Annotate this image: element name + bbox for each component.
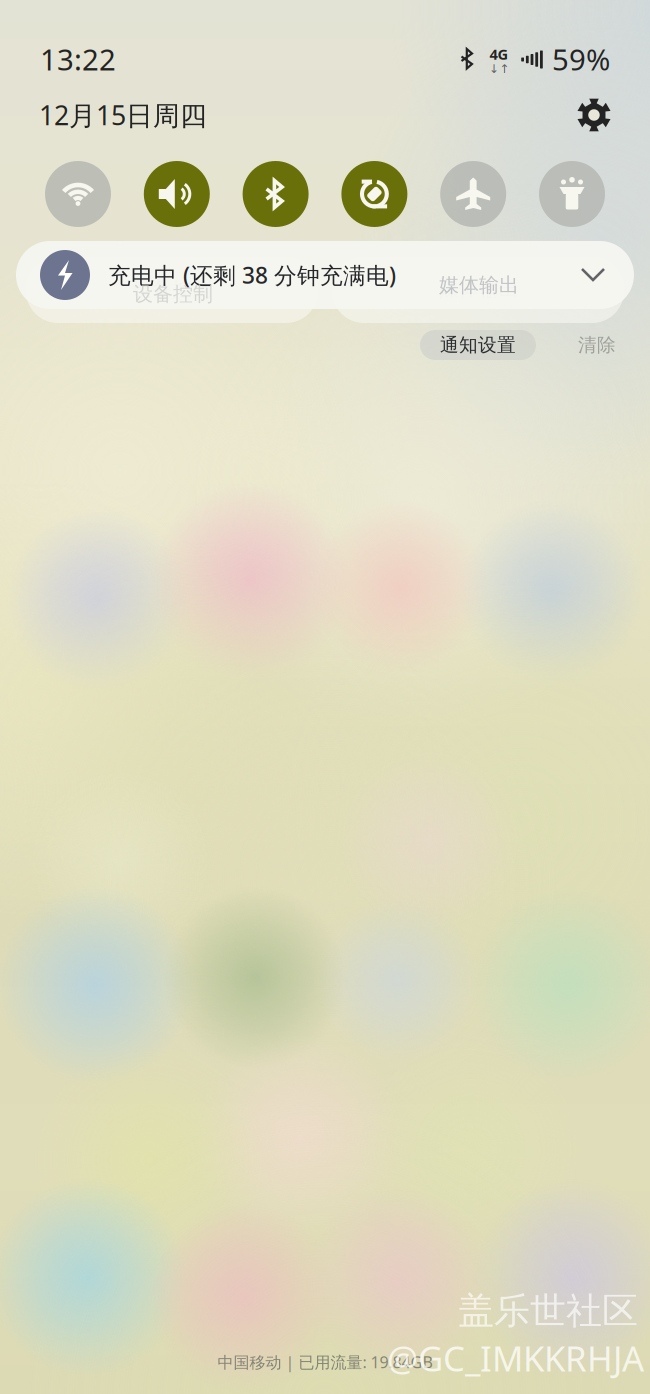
button[interactable]: 充电中 (还剩 38 分钟充满电) xyxy=(16,241,634,309)
button[interactable]: Auto rotate xyxy=(341,161,407,227)
staticText: 59% xyxy=(552,39,610,78)
button[interactable]: 通知设置 xyxy=(420,330,536,360)
button[interactable]: 清除 xyxy=(566,330,628,360)
staticText: 中国移动 | 已用流量: 19.84GB xyxy=(217,1351,432,1373)
staticText: 充电中 (还剩 38 分钟充满电) xyxy=(108,260,396,290)
staticText: ↑ xyxy=(499,62,509,75)
button[interactable]: Wi-Fi xyxy=(45,161,111,227)
staticText: @GC_IMKKRHJA xyxy=(387,1335,644,1381)
button[interactable]: Flashlight xyxy=(539,161,605,227)
staticText: 设备控制 xyxy=(132,277,212,301)
staticText: 通知设置 xyxy=(440,333,516,356)
staticText: ↓ xyxy=(489,62,499,75)
button[interactable]: Settings xyxy=(577,98,611,132)
button[interactable]: Sound xyxy=(144,161,210,227)
staticText: 盖乐世社区 xyxy=(458,1289,638,1333)
staticText: 13:22 xyxy=(40,39,116,78)
button[interactable]: Bluetooth xyxy=(243,161,309,227)
staticText: 清除 xyxy=(578,333,616,356)
staticText: 媒体输出 xyxy=(439,277,519,301)
staticText: 设备控制 xyxy=(133,282,213,306)
staticText: 4G xyxy=(489,44,508,64)
staticText: 12月15日周四 xyxy=(39,97,207,133)
staticText: 媒体输出 xyxy=(439,273,519,297)
button[interactable]: Airplane mode xyxy=(440,161,506,227)
